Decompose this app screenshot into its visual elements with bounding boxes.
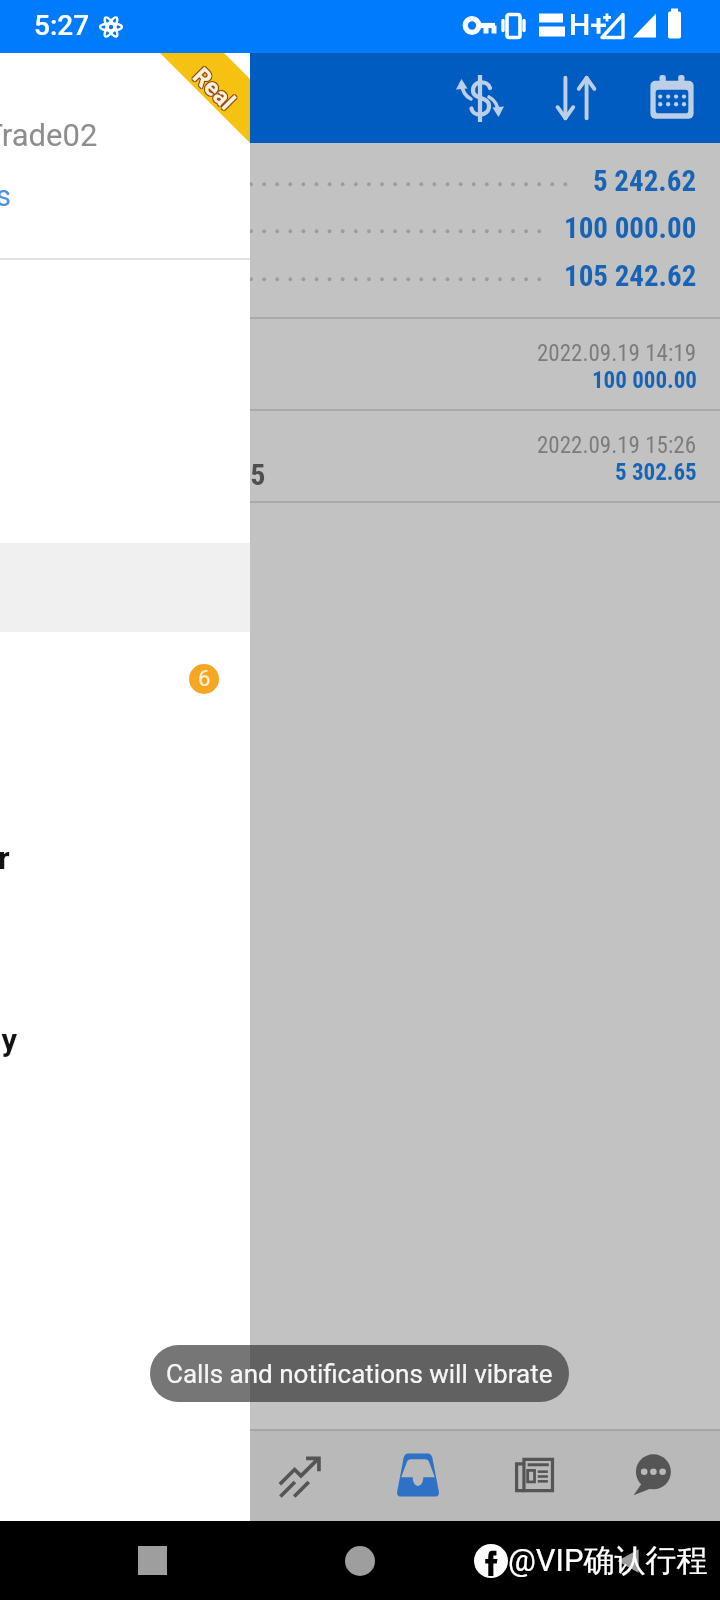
button[interactable]: Quotes: [126, 1431, 242, 1523]
button[interactable]: Chat: [593, 1431, 710, 1523]
staticText: Real: [186, 62, 240, 116]
staticText: Calendar: [0, 840, 25, 876]
staticText: MetaQuotes-Demo Trade02: [0, 117, 118, 153]
staticText: H+: [569, 7, 607, 42]
staticText: 0.99775 → 1.05245: [27, 457, 266, 492]
staticText: Economy: [0, 1022, 29, 1058]
button[interactable]: Accounts: [10, 1431, 126, 1523]
staticText: @VIP确认行程: [508, 1541, 708, 1580]
staticText: 100 000.00: [564, 211, 697, 245]
staticText: Real: [187, 62, 241, 116]
staticText: 2022.09.19 15:26: [537, 432, 697, 459]
button[interactable]: buy 1.00 EURUSD: [0, 410, 720, 501]
staticText: Balance:: [24, 258, 126, 293]
staticText: Real: [186, 61, 240, 115]
staticText: 5 302.65: [615, 459, 697, 486]
button[interactable]: Balance:: [0, 252, 720, 299]
staticText: 105 242.62: [564, 259, 697, 293]
button[interactable]: balance: [0, 318, 720, 409]
staticText: 5:27: [34, 9, 90, 42]
button[interactable]: Charts: [242, 1431, 359, 1523]
button[interactable]: New order: [432, 53, 528, 143]
staticText: Real: [188, 63, 242, 117]
staticText: 6: [198, 666, 211, 692]
staticText: Real: [188, 61, 242, 115]
staticText: 5 242.62: [593, 164, 697, 198]
button[interactable]: Trade: [359, 1431, 476, 1523]
staticText: Real: [186, 63, 240, 117]
staticText: Manage accounts: [0, 179, 40, 213]
button[interactable]: Deposit:: [0, 204, 720, 251]
button[interactable]: Profit:: [0, 157, 720, 204]
staticText: Calls and notifications will vibrate: [166, 1359, 553, 1389]
staticText: 2022.09.19 14:19: [537, 340, 697, 367]
staticText: 100 000.00: [592, 367, 697, 394]
button[interactable]: News: [476, 1431, 593, 1523]
staticText: Real: [187, 62, 241, 116]
staticText: Real: [187, 63, 241, 117]
button[interactable]: Back: [614, 1547, 642, 1575]
button[interactable]: Sort: [528, 53, 624, 143]
staticText: Real: [187, 61, 241, 115]
staticText: Real: [188, 62, 242, 116]
button[interactable]: Period: [624, 53, 720, 143]
button[interactable]: Home: [345, 1546, 375, 1576]
